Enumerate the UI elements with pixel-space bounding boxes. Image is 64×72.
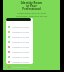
staticText: Category name: [12, 55, 30, 58]
button[interactable]: Category name: [6, 44, 33, 49]
staticText: Category name: [12, 35, 30, 38]
button[interactable]: Category name: [6, 49, 33, 54]
button[interactable]: Category name: [6, 29, 33, 34]
staticText: Category name: [12, 30, 30, 33]
button[interactable]: Category name: [6, 59, 33, 64]
button[interactable]: Category name: [6, 39, 33, 44]
button[interactable]: Category name: [6, 64, 33, 69]
staticText: Category name: [12, 25, 30, 28]
button[interactable]: Category name: [6, 54, 33, 59]
staticText: Category name: [12, 50, 30, 53]
button[interactable]: Category name: [6, 24, 33, 29]
staticText: Category name: [12, 40, 30, 43]
button[interactable]: Section title: [6, 18, 31, 21]
staticText: Identity Room in Your Professional: [3, 1, 60, 11]
button[interactable]: Category name: [6, 34, 33, 39]
staticText: Category name: [12, 60, 30, 63]
staticText: Lorem ipsum dolor sit amet consectetur a…: [3, 12, 60, 18]
staticText: Category name: [12, 45, 30, 48]
staticText: Category name: [12, 65, 30, 68]
